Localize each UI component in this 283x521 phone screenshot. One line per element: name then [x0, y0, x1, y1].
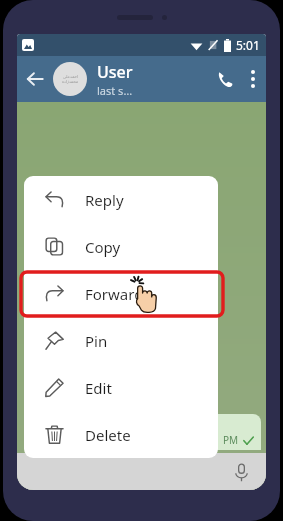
staticText: Forward [85, 284, 144, 304]
staticText: Pin [85, 331, 108, 351]
button[interactable]: User [97, 61, 210, 98]
button[interactable]: Reply [24, 176, 218, 223]
staticText: Delete [85, 425, 131, 445]
staticText: User [97, 61, 133, 83]
staticText: last s… [97, 83, 133, 98]
button[interactable]: Profile photo [53, 62, 87, 96]
button[interactable]: Call [210, 56, 240, 102]
staticText: Reply [85, 190, 124, 210]
button[interactable]: Pin [24, 317, 218, 364]
staticText: احمدعلی [63, 74, 79, 79]
staticText: 5:01 [236, 37, 260, 53]
button[interactable]: Back [17, 56, 53, 102]
staticText: Edit [85, 378, 112, 398]
staticText: محمدزاده [62, 79, 79, 84]
button[interactable]: More options [240, 56, 266, 102]
button[interactable]: Forward [24, 270, 218, 317]
button[interactable]: Copy [24, 223, 218, 270]
button[interactable]: Edit [24, 364, 218, 411]
button[interactable]: PM [146, 414, 261, 450]
staticText: PM [223, 433, 239, 447]
button[interactable]: Delete [24, 411, 218, 458]
staticText: Copy [85, 237, 121, 257]
button[interactable]: Voice message [227, 458, 255, 486]
